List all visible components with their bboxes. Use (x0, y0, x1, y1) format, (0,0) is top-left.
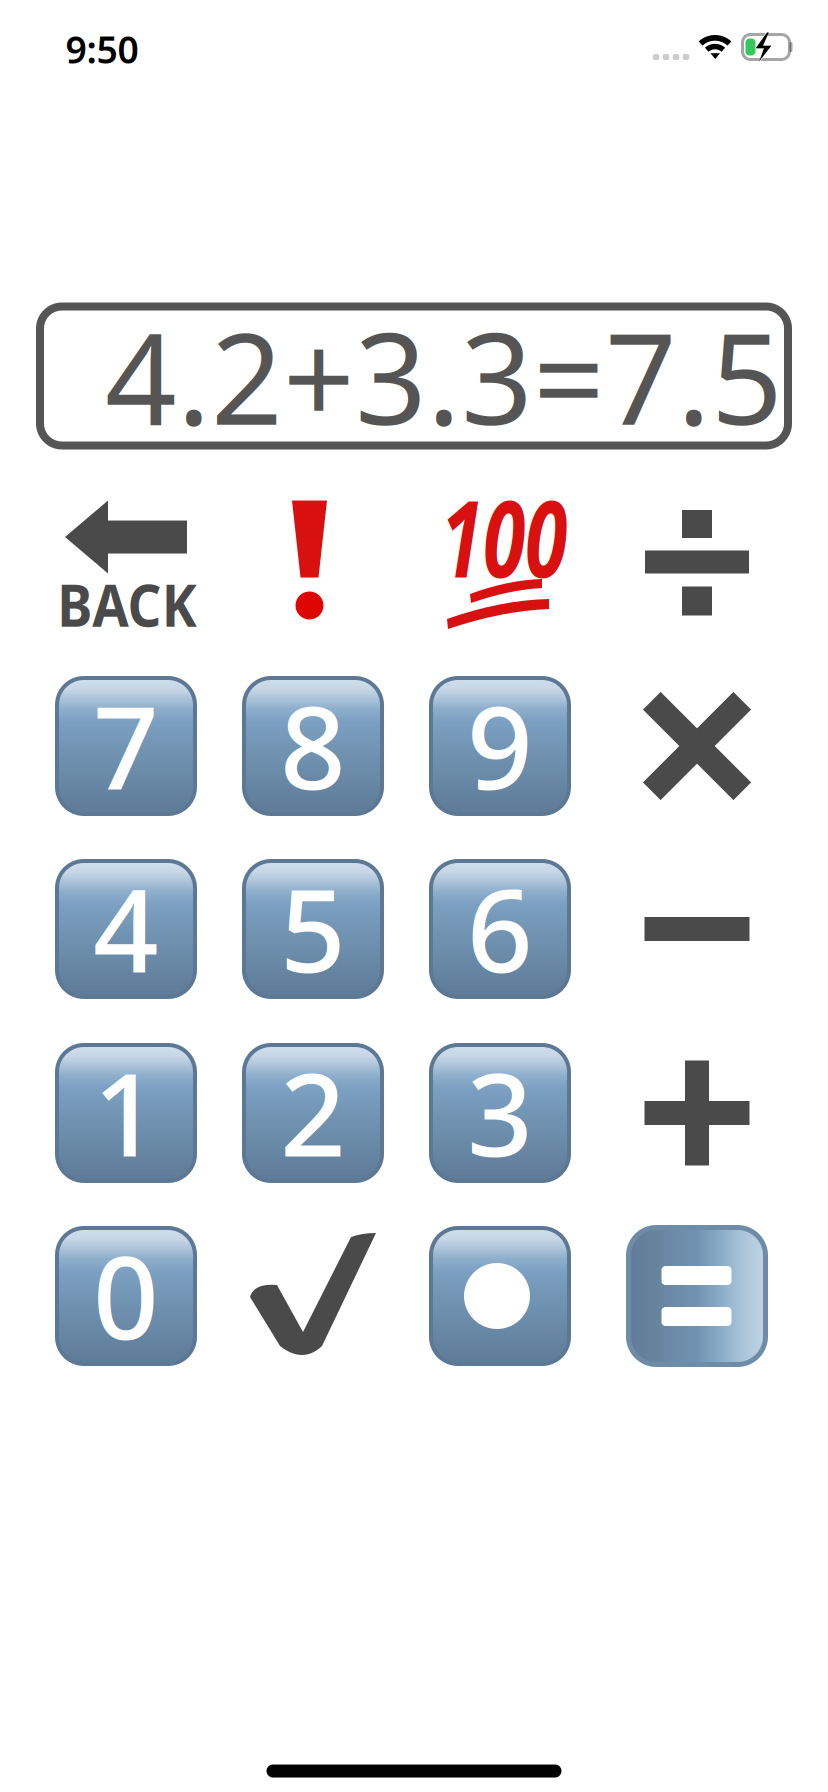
staticText: 8 (280, 669, 346, 821)
button[interactable]: 2 (243, 1044, 383, 1182)
button[interactable]: Hundred (430, 493, 570, 631)
button[interactable]: 0 (56, 1227, 196, 1365)
staticText: BACK (49, 565, 204, 643)
button[interactable]: Subtract (627, 860, 767, 998)
staticText: 4 (93, 852, 159, 1004)
button[interactable]: 5 (243, 860, 383, 998)
button[interactable]: Back (56, 493, 196, 631)
staticText: 3 (467, 1036, 533, 1188)
button[interactable]: 4 (56, 860, 196, 998)
button[interactable]: 7 (56, 677, 196, 815)
button[interactable]: Multiply (627, 677, 767, 815)
button[interactable]: Clear (243, 493, 383, 631)
staticText: 1 (93, 1036, 159, 1188)
staticText: 4.2+3.3=7.5 (105, 293, 783, 459)
button[interactable]: Divide (627, 493, 767, 631)
button[interactable]: Decimal point (430, 1227, 570, 1365)
button[interactable]: Equals (627, 1226, 766, 1365)
button[interactable]: 9 (430, 677, 570, 815)
button[interactable]: 1 (56, 1044, 196, 1182)
button[interactable]: 6 (430, 860, 570, 998)
staticText: 100 (409, 460, 598, 612)
staticText: 5 (280, 852, 346, 1004)
button[interactable]: Enter (243, 1227, 383, 1365)
staticText: 0 (93, 1219, 159, 1371)
staticText: 2 (280, 1036, 346, 1188)
staticText: 7 (93, 669, 159, 821)
staticText: 9 (467, 669, 533, 821)
button[interactable]: 8 (243, 677, 383, 815)
staticText: 9:50 (65, 24, 138, 74)
staticText: 6 (467, 852, 533, 1004)
button[interactable]: 3 (430, 1044, 570, 1182)
button[interactable]: Add (627, 1044, 767, 1182)
